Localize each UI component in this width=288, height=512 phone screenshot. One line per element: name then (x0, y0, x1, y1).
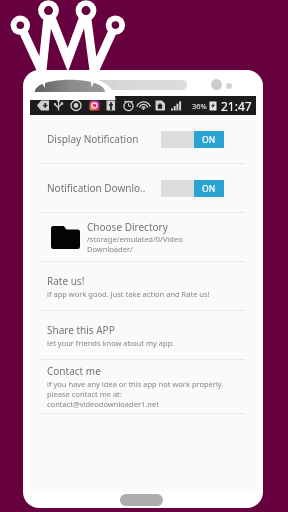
staticText: please contact me at: (47, 389, 122, 399)
button[interactable]: Share this APP (30, 311, 256, 359)
staticText: Contact me (47, 364, 101, 378)
staticText: if you have any idea or this app not wor… (47, 379, 224, 389)
staticText: Choose Directory (87, 220, 168, 234)
staticText: 36% (192, 101, 207, 111)
staticText: Downloader/ (87, 244, 133, 254)
staticText: let your friends know about my app. (47, 338, 175, 348)
button[interactable]: Notification Downlo.. (30, 164, 256, 212)
staticText: ON (202, 134, 216, 146)
staticText: Notification Downlo.. (47, 181, 146, 195)
button[interactable]: Choose Directory (30, 213, 256, 261)
button[interactable]: Contact me (30, 360, 256, 413)
button[interactable]: Rate us! (30, 262, 256, 310)
button[interactable]: Display Notification (30, 115, 256, 163)
staticText: if app work good. Just take action and R… (47, 289, 210, 299)
staticText: 21:47 (221, 98, 252, 114)
staticText: ON (202, 183, 216, 195)
staticText: Display Notification (47, 132, 139, 146)
staticText: contact@videodownloader1.net (47, 399, 159, 409)
staticText: /storage/emulated/0/Video (87, 234, 183, 244)
staticText: Rate us! (47, 274, 85, 288)
staticText: Share this APP (47, 323, 115, 337)
other: App logo (0, 0, 288, 512)
